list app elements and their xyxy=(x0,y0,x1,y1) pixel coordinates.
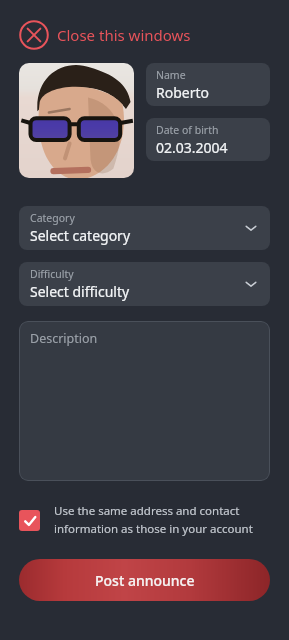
button[interactable]: Date of birth xyxy=(146,118,270,161)
other: Close this window xyxy=(19,20,49,50)
staticText: Date of birth xyxy=(156,123,219,137)
button[interactable]: Post announce xyxy=(19,559,270,601)
button[interactable]: Description xyxy=(19,321,270,481)
staticText: information as those in your account xyxy=(54,521,253,537)
button[interactable]: Name xyxy=(146,63,270,106)
staticText: Roberto xyxy=(156,83,209,102)
button[interactable]: Close this window xyxy=(19,20,197,50)
staticText: Category xyxy=(30,211,75,225)
staticText: Name xyxy=(156,68,186,82)
staticText: 02.03.2004 xyxy=(156,138,228,157)
button[interactable]: Select difficulty xyxy=(19,262,270,306)
button[interactable]: Select category xyxy=(19,206,270,250)
staticText: Use the same address and contact xyxy=(54,503,240,519)
staticText: Close this windows xyxy=(57,25,191,45)
staticText: Select difficulty xyxy=(30,282,130,301)
staticText: Post announce xyxy=(95,571,195,590)
staticText: Description xyxy=(30,330,98,347)
staticText: Difficulty xyxy=(30,267,74,281)
button[interactable]: Profile photo xyxy=(19,63,134,178)
staticText: Select category xyxy=(30,226,131,245)
button[interactable]: Use the same address and contact xyxy=(19,499,270,541)
